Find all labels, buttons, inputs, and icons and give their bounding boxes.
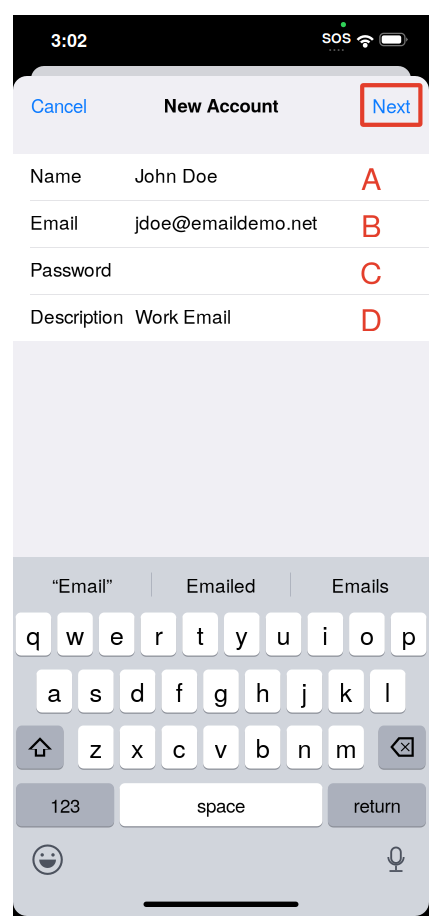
staticText: j bbox=[301, 673, 307, 709]
button[interactable]: Emailed bbox=[152, 557, 290, 612]
staticText: return bbox=[353, 791, 400, 818]
button[interactable]: o bbox=[349, 612, 385, 657]
button[interactable]: j bbox=[287, 669, 322, 714]
staticText: Description bbox=[30, 302, 124, 329]
button[interactable]: n bbox=[287, 725, 322, 770]
button[interactable]: Description bbox=[13, 295, 429, 341]
staticText: m bbox=[336, 729, 357, 765]
staticText: q bbox=[26, 616, 40, 652]
button[interactable]: h bbox=[245, 669, 281, 714]
button[interactable]: Name bbox=[13, 154, 429, 200]
staticText: 123 bbox=[50, 791, 80, 818]
button[interactable]: k bbox=[328, 669, 364, 714]
staticText: b bbox=[256, 729, 270, 765]
button[interactable]: f bbox=[161, 669, 197, 714]
button[interactable]: 123 bbox=[16, 783, 114, 827]
staticText: c bbox=[173, 729, 186, 765]
staticText: a bbox=[47, 673, 61, 709]
button[interactable]: g bbox=[203, 669, 239, 714]
button[interactable]: q bbox=[15, 612, 51, 657]
staticText: space bbox=[197, 791, 245, 818]
button[interactable]: Next bbox=[362, 85, 420, 125]
staticText: Next bbox=[372, 91, 410, 118]
staticText: Work Email bbox=[135, 302, 231, 329]
button[interactable]: m bbox=[328, 725, 364, 770]
button[interactable]: i bbox=[307, 612, 343, 657]
staticText: “Email” bbox=[52, 571, 112, 598]
staticText: Emails bbox=[331, 571, 388, 598]
staticText: A bbox=[361, 155, 381, 199]
staticText: l bbox=[385, 673, 391, 709]
staticText: i bbox=[322, 616, 328, 652]
button[interactable]: “Email” bbox=[13, 557, 151, 612]
staticText: u bbox=[277, 616, 291, 652]
button[interactable]: Emails bbox=[291, 557, 429, 612]
button[interactable]: u bbox=[266, 612, 301, 657]
staticText: v bbox=[214, 729, 227, 765]
staticText: n bbox=[297, 729, 311, 765]
button[interactable]: a bbox=[36, 669, 72, 714]
button[interactable]: x bbox=[120, 725, 155, 770]
button[interactable]: c bbox=[161, 725, 197, 770]
staticText: z bbox=[89, 729, 102, 765]
button[interactable]: Cancel bbox=[24, 83, 94, 127]
button[interactable]: e bbox=[99, 612, 135, 657]
button[interactable]: r bbox=[141, 612, 176, 657]
staticText: D bbox=[360, 296, 382, 340]
staticText: k bbox=[340, 673, 353, 709]
button[interactable]: z bbox=[78, 725, 114, 770]
staticText: t bbox=[197, 616, 204, 652]
staticText: C bbox=[360, 249, 382, 293]
staticText: d bbox=[131, 673, 145, 709]
button[interactable]: v bbox=[203, 725, 239, 770]
button[interactable]: t bbox=[182, 612, 218, 657]
staticText: h bbox=[256, 673, 270, 709]
staticText: s bbox=[89, 673, 102, 709]
staticText: Name bbox=[30, 161, 82, 188]
button[interactable]: Email bbox=[13, 201, 429, 247]
button[interactable]: p bbox=[391, 612, 426, 657]
staticText: B bbox=[361, 202, 381, 246]
button[interactable]: Emoji keyboard bbox=[24, 836, 71, 883]
staticText: f bbox=[176, 673, 183, 709]
staticText: Cancel bbox=[31, 92, 87, 118]
staticText: p bbox=[402, 616, 416, 652]
staticText: 3:02 bbox=[51, 26, 87, 52]
button[interactable]: Delete bbox=[378, 725, 425, 770]
staticText: Emailed bbox=[186, 571, 256, 598]
button[interactable]: y bbox=[224, 612, 260, 657]
button[interactable]: s bbox=[78, 669, 114, 714]
staticText: e bbox=[110, 616, 124, 652]
button[interactable]: b bbox=[245, 725, 281, 770]
button[interactable]: Password bbox=[13, 248, 429, 294]
staticText: jdoe@emaildemo.net bbox=[135, 208, 317, 235]
staticText: g bbox=[214, 673, 228, 709]
button[interactable]: space bbox=[119, 783, 322, 827]
button[interactable]: Dictation bbox=[378, 838, 414, 881]
staticText: John Doe bbox=[135, 161, 218, 188]
staticText: o bbox=[360, 616, 374, 652]
staticText: Email bbox=[30, 208, 78, 235]
staticText: y bbox=[235, 616, 248, 652]
button[interactable]: d bbox=[120, 669, 155, 714]
button[interactable]: return bbox=[328, 783, 426, 827]
staticText: r bbox=[154, 616, 162, 652]
button[interactable]: l bbox=[370, 669, 406, 714]
button[interactable]: w bbox=[57, 612, 93, 657]
staticText: Password bbox=[30, 255, 112, 282]
staticText: New Account bbox=[163, 92, 278, 118]
staticText: SOS bbox=[322, 28, 351, 47]
staticText: x bbox=[131, 729, 144, 765]
button[interactable]: Shift bbox=[16, 725, 63, 770]
staticText: w bbox=[66, 616, 84, 652]
